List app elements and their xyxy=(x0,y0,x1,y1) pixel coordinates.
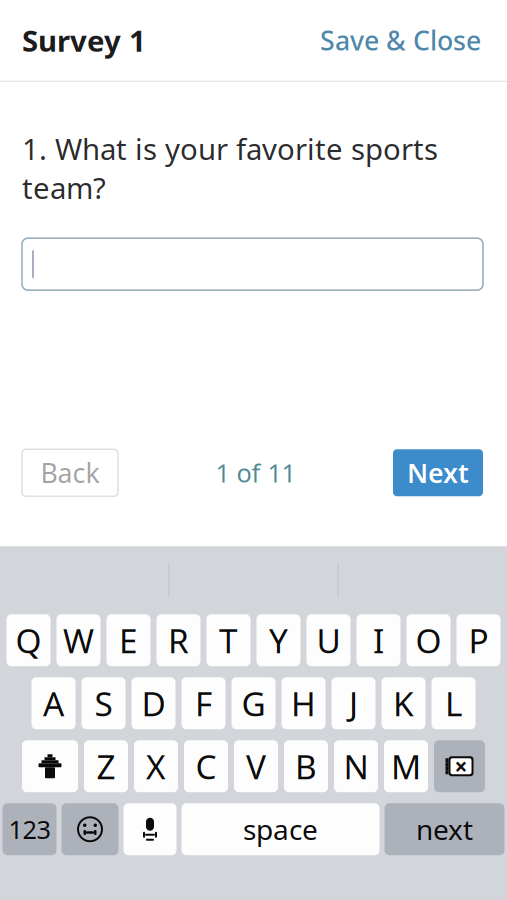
staticText: Survey 1 xyxy=(22,21,146,60)
button[interactable]: B xyxy=(284,740,328,792)
button[interactable]: Emoji xyxy=(61,803,118,855)
button[interactable]: V xyxy=(234,740,278,792)
button[interactable]: next xyxy=(384,803,504,855)
button[interactable]: X xyxy=(134,740,178,792)
staticText: Save & Close xyxy=(320,22,481,58)
button[interactable]: 123 xyxy=(2,803,56,855)
button[interactable]: D xyxy=(131,677,175,729)
button[interactable]: Q xyxy=(6,614,50,666)
staticText: next xyxy=(416,811,473,848)
button[interactable]: Dictate xyxy=(123,803,176,855)
staticText: O xyxy=(415,618,441,662)
staticText: L xyxy=(445,681,462,725)
staticText: M xyxy=(391,744,421,788)
staticText: C xyxy=(195,744,216,788)
staticText: J xyxy=(349,681,358,725)
button[interactable]: A xyxy=(31,677,75,729)
button[interactable]: Z xyxy=(84,740,128,792)
staticText: H xyxy=(291,681,316,725)
staticText: Y xyxy=(269,618,288,662)
staticText: V xyxy=(246,744,266,788)
staticText: G xyxy=(241,681,265,725)
staticText: D xyxy=(141,681,165,725)
button[interactable]: M xyxy=(384,740,428,792)
button[interactable]: E xyxy=(106,614,150,666)
button[interactable]: T xyxy=(206,614,250,666)
button[interactable]: W xyxy=(56,614,100,666)
button[interactable]: G xyxy=(231,677,275,729)
staticText: × xyxy=(454,751,467,781)
staticText: X xyxy=(146,744,166,788)
button[interactable]: F xyxy=(181,677,225,729)
button[interactable]: L xyxy=(431,677,475,729)
staticText: P xyxy=(468,618,488,662)
button[interactable]: H xyxy=(281,677,325,729)
button[interactable]: Shift xyxy=(22,740,78,792)
staticText: 1 of 11 xyxy=(215,456,295,489)
button[interactable]: K xyxy=(381,677,425,729)
staticText: Z xyxy=(96,744,115,788)
staticText: A xyxy=(43,681,64,725)
button[interactable]: Save & Close xyxy=(316,14,485,66)
staticText: I xyxy=(373,618,384,662)
staticText: T xyxy=(219,618,238,662)
button[interactable]: S xyxy=(81,677,125,729)
staticText: Next xyxy=(407,455,469,490)
button[interactable]: C xyxy=(184,740,228,792)
staticText: U xyxy=(316,618,340,662)
button[interactable]: Y xyxy=(256,614,300,666)
staticText: Q xyxy=(15,618,41,662)
button[interactable]: space xyxy=(181,803,379,855)
button[interactable]: R xyxy=(156,614,200,666)
button[interactable]: Next xyxy=(393,449,483,496)
staticText: B xyxy=(295,744,317,788)
button[interactable]: O xyxy=(406,614,450,666)
button[interactable]: N xyxy=(334,740,378,792)
staticText: N xyxy=(343,744,368,788)
staticText: E xyxy=(119,618,138,662)
button[interactable]: P xyxy=(456,614,500,666)
staticText: 123 xyxy=(8,812,50,846)
staticText: K xyxy=(393,681,414,725)
staticText: R xyxy=(168,618,189,662)
staticText: 1. What is your favorite sports team? xyxy=(22,129,438,207)
button[interactable]: I xyxy=(356,614,400,666)
staticText: Back xyxy=(40,455,99,490)
staticText: S xyxy=(94,681,112,725)
button[interactable]: Delete xyxy=(434,740,485,792)
staticText: W xyxy=(63,618,94,662)
staticText: space xyxy=(243,811,318,848)
button[interactable]: J xyxy=(331,677,375,729)
staticText: F xyxy=(195,681,212,725)
button[interactable]: Back xyxy=(22,449,118,496)
button[interactable]: U xyxy=(306,614,350,666)
